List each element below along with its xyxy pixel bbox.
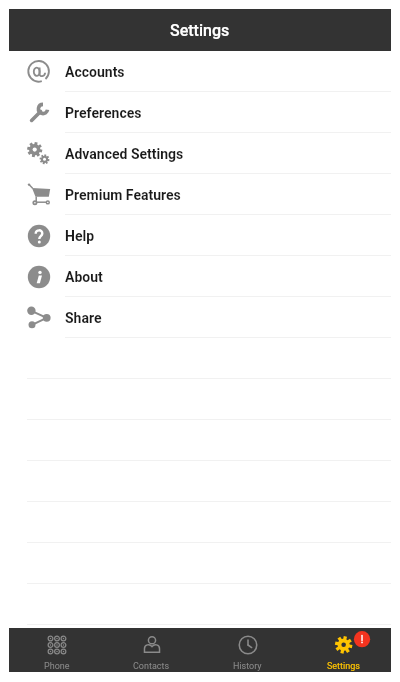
staticText: About — [65, 269, 103, 285]
staticText: Advanced Settings — [65, 146, 184, 162]
staticText: Settings — [170, 21, 230, 40]
staticText: Accounts — [65, 64, 125, 80]
button[interactable]: Settings — [295, 628, 391, 672]
staticText: Preferences — [65, 105, 142, 121]
button[interactable]: Advanced Settings — [9, 133, 391, 174]
button[interactable]: Premium Features — [9, 174, 391, 215]
staticText: History — [233, 661, 262, 672]
staticText: Settings — [327, 661, 360, 672]
button[interactable]: Share — [9, 297, 391, 338]
button[interactable]: About — [9, 256, 391, 297]
staticText: Phone — [44, 661, 70, 672]
staticText: Premium Features — [65, 187, 181, 203]
button[interactable]: Contacts — [104, 628, 199, 672]
button[interactable]: Help — [9, 215, 391, 256]
staticText: Share — [65, 310, 102, 326]
staticText: Contacts — [133, 661, 170, 672]
button[interactable]: History — [199, 628, 295, 672]
button[interactable]: Settings — [9, 9, 391, 51]
button[interactable]: Preferences — [9, 92, 391, 133]
button[interactable]: Accounts — [9, 51, 391, 92]
button[interactable]: Phone — [9, 628, 104, 672]
staticText: Help — [65, 228, 95, 244]
